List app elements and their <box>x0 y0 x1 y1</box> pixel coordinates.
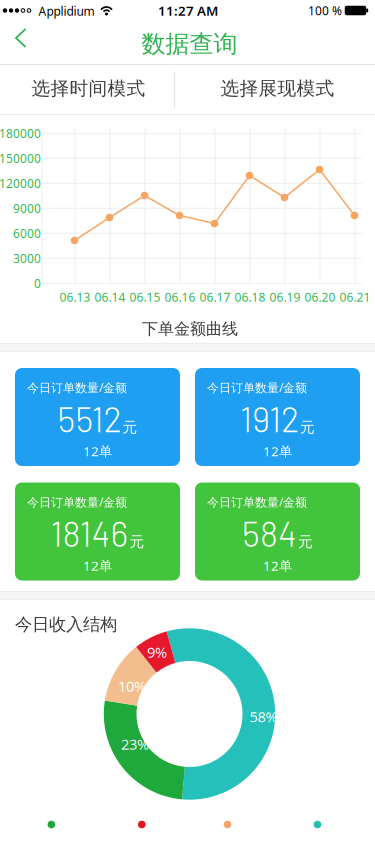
staticText: 数据查询 <box>141 29 237 59</box>
staticText: 今日订单数量/金额 <box>27 379 127 395</box>
staticText: 5512 <box>57 398 121 439</box>
staticText: 今日订单数量/金额 <box>207 379 307 395</box>
staticText: 今日收入结构 <box>15 614 117 635</box>
staticText: 元 <box>298 533 313 551</box>
staticText: 选择时间模式 <box>31 77 145 100</box>
staticText: 06.21 <box>339 289 370 305</box>
staticText: 0 <box>34 275 41 291</box>
staticText: 18146 <box>50 512 128 554</box>
staticText: 选择展现模式 <box>220 77 334 100</box>
staticText: 180000 <box>0 125 41 141</box>
staticText: 100 % <box>308 2 342 18</box>
staticText: 06.18 <box>234 289 265 305</box>
staticText: 11:27 AM <box>158 2 218 19</box>
button[interactable]: 选择展现模式 <box>177 64 375 112</box>
staticText: 06.14 <box>94 289 125 305</box>
staticText: 6000 <box>13 225 41 241</box>
staticText: 今日订单数量/金额 <box>207 494 307 510</box>
staticText: 150000 <box>0 150 41 166</box>
button[interactable]: Back <box>15 28 39 52</box>
staticText: 12单 <box>263 557 292 574</box>
staticText: 06.16 <box>164 289 195 305</box>
staticText: 12单 <box>263 442 292 460</box>
staticText: 元 <box>300 418 315 436</box>
staticText: 23% <box>121 734 149 754</box>
staticText: 120000 <box>0 175 41 191</box>
staticText: 06.19 <box>269 289 300 305</box>
staticText: 元 <box>129 533 144 551</box>
staticText: 12单 <box>83 557 112 574</box>
staticText: 下单金额曲线 <box>142 319 238 339</box>
staticText: 元 <box>122 418 137 436</box>
staticText: 06.20 <box>304 289 335 305</box>
staticText: 06.13 <box>59 289 90 305</box>
staticText: 06.15 <box>129 289 160 305</box>
staticText: 9000 <box>13 200 41 216</box>
staticText: Applidium <box>38 3 94 19</box>
button[interactable]: 选择时间模式 <box>1 64 175 112</box>
staticText: 9% <box>147 642 167 662</box>
staticText: 今日订单数量/金额 <box>27 494 127 510</box>
staticText: 3000 <box>13 250 41 266</box>
staticText: 584 <box>242 512 297 554</box>
staticText: 58% <box>249 707 277 726</box>
staticText: 06.17 <box>199 289 230 305</box>
staticText: 1912 <box>240 398 299 439</box>
staticText: 12单 <box>83 442 112 460</box>
staticText: 10% <box>118 676 146 696</box>
